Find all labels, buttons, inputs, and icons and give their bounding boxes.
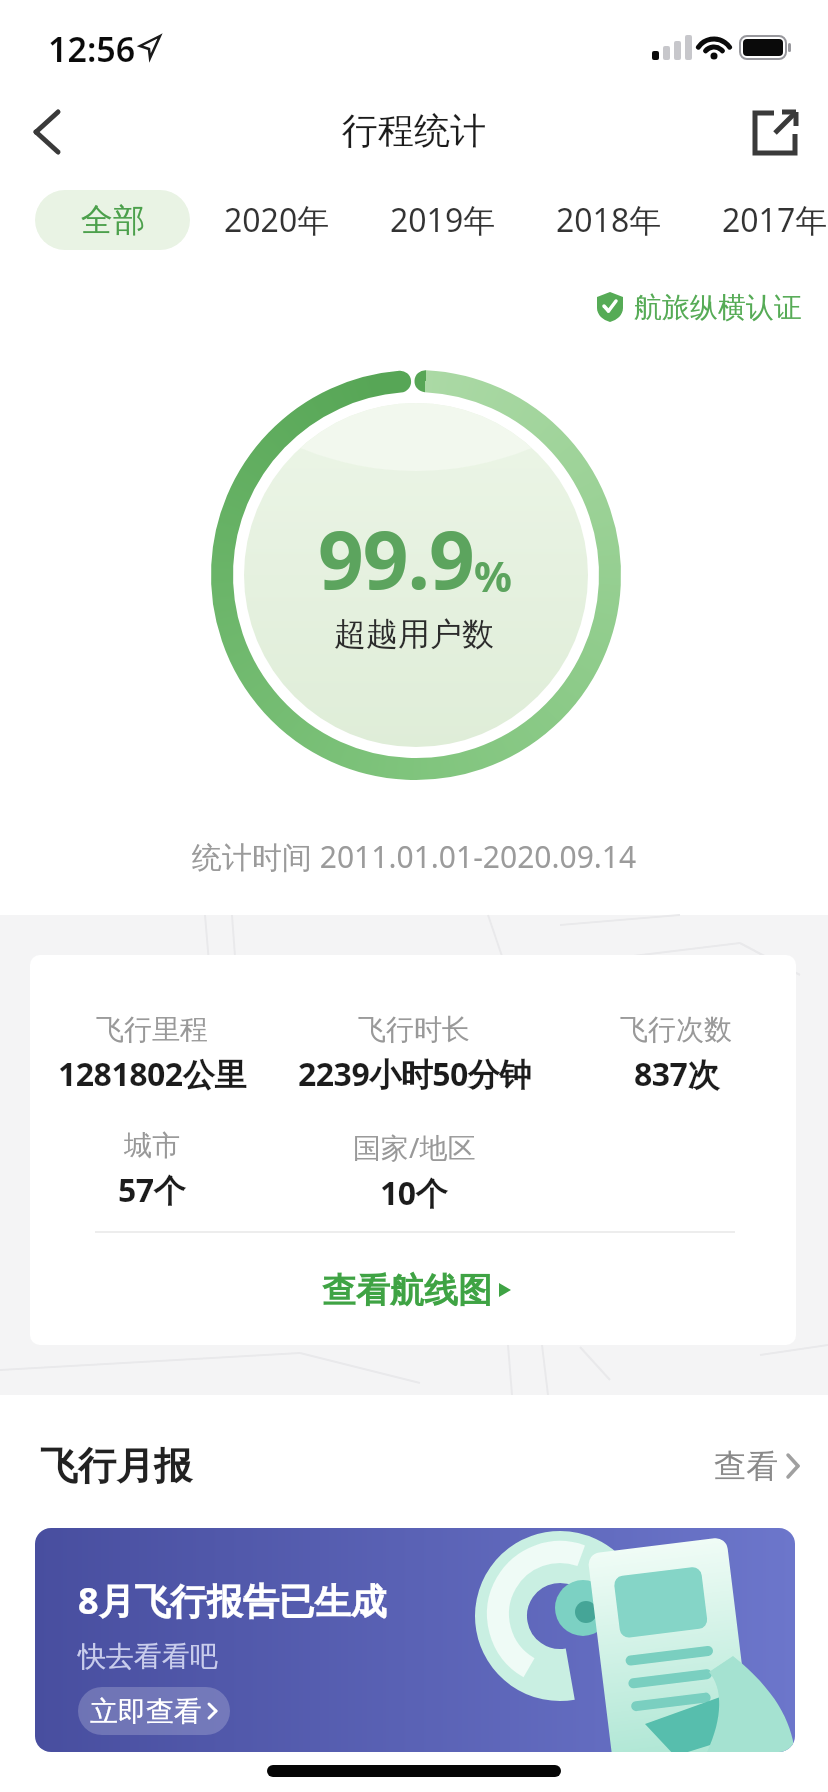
staticText: 查看航线图 — [322, 1269, 492, 1312]
staticText: 1281802公里 — [58, 1052, 246, 1096]
staticText: 国家/地区 — [353, 1128, 476, 1166]
staticText: 837次 — [634, 1052, 719, 1096]
staticText: 城市 — [124, 1128, 180, 1163]
staticText: 8月飞行报告已生成 — [78, 1576, 387, 1625]
staticText: 统计时间 2011.01.01-2020.09.14 — [192, 836, 637, 877]
button[interactable]: 查看航线图 — [307, 1265, 527, 1315]
button[interactable]: 2019年 — [360, 190, 526, 250]
staticText: 12:56 — [48, 26, 136, 72]
staticText: 超越用户数 — [334, 614, 494, 654]
staticText: 99.9 — [318, 503, 474, 612]
button[interactable] — [742, 102, 804, 164]
staticText: 飞行月报 — [40, 1442, 192, 1490]
button[interactable]: 2017年 — [692, 190, 828, 250]
staticText: 航旅纵横认证 — [634, 290, 802, 325]
button[interactable]: 全部 — [35, 190, 190, 250]
staticText: 10个 — [380, 1171, 448, 1215]
button[interactable] — [20, 105, 80, 161]
button[interactable]: 航旅纵横认证 — [596, 288, 802, 326]
staticText: % — [474, 547, 511, 604]
staticText: 2239小时50分钟 — [298, 1052, 531, 1096]
staticText: 2019年 — [390, 198, 496, 242]
staticText: 2017年 — [722, 198, 828, 242]
staticText: 全部 — [81, 200, 145, 240]
staticText: 2018年 — [556, 198, 662, 242]
button[interactable]: 立即查看 — [78, 1687, 230, 1735]
staticText: 查看 — [714, 1446, 778, 1486]
staticText: 快去看看吧 — [78, 1639, 218, 1674]
staticText: 2020年 — [224, 198, 330, 242]
button[interactable]: 查看 — [680, 1442, 800, 1490]
staticText: 飞行次数 — [620, 1012, 732, 1047]
button[interactable]: 2020年 — [194, 190, 360, 250]
button[interactable]: 2018年 — [526, 190, 692, 250]
staticText: 飞行里程 — [96, 1012, 208, 1047]
button[interactable]: 8月飞行报告已生成 — [35, 1528, 795, 1752]
staticText: 行程统计 — [342, 108, 486, 153]
staticText: 57个 — [118, 1168, 186, 1212]
staticText: 立即查看 — [90, 1694, 202, 1729]
staticText: 飞行时长 — [358, 1012, 470, 1047]
